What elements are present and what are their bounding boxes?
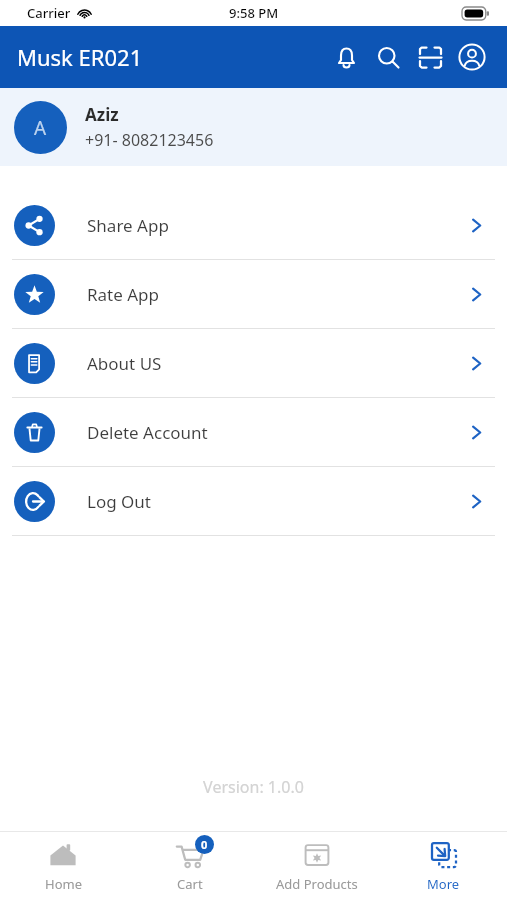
staticText: Carrier [27, 4, 71, 22]
button[interactable]: Search [367, 36, 409, 78]
staticText: More [427, 875, 460, 893]
button[interactable]: Home [0, 832, 126, 900]
button[interactable]: Account [451, 36, 493, 78]
button[interactable]: More [380, 832, 507, 900]
staticText: Add Products [276, 875, 358, 893]
button[interactable]: A [0, 88, 507, 166]
button[interactable]: Notifications [325, 36, 367, 78]
staticText: Rate App [87, 283, 160, 306]
button[interactable]: Share App [0, 191, 507, 259]
staticText: Musk ER021 [17, 42, 143, 72]
button[interactable]: Scan QR code [409, 36, 451, 78]
staticText: 0 [201, 837, 208, 852]
staticText: Share App [87, 214, 169, 237]
staticText: Home [45, 875, 82, 893]
button[interactable]: Rate App [0, 260, 507, 328]
staticText: 9:58 PM [229, 4, 279, 22]
staticText: +91- 8082123456 [85, 129, 214, 151]
staticText: Log Out [87, 490, 151, 513]
staticText: About US [87, 352, 162, 375]
button[interactable]: Delete Account [0, 398, 507, 466]
button[interactable]: 0 [126, 832, 253, 900]
staticText: Delete Account [87, 421, 208, 444]
staticText: A [34, 115, 47, 141]
button[interactable]: Add Products [253, 832, 380, 900]
button[interactable]: Log Out [0, 467, 507, 535]
staticText: Version: 1.0.0 [0, 776, 507, 798]
staticText: Cart [177, 875, 203, 893]
button[interactable]: About US [0, 329, 507, 397]
staticText: Aziz [85, 103, 119, 126]
